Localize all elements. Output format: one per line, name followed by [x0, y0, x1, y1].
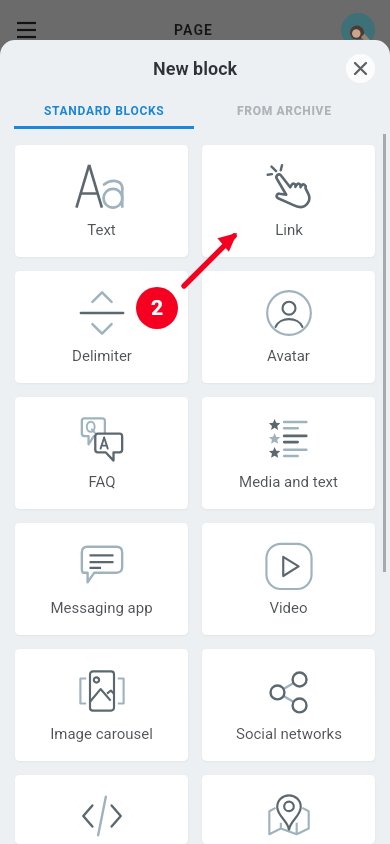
button[interactable]: Delimiter: [15, 271, 188, 383]
button[interactable]: Social networks: [202, 649, 375, 761]
staticText: STANDARD BLOCKS: [44, 104, 165, 118]
staticText: FAQ: [88, 473, 116, 491]
staticText: Media and text: [239, 473, 338, 491]
button[interactable]: Media and text: [202, 397, 375, 509]
staticText: Messaging app: [50, 599, 153, 617]
staticText: FROM ARCHIVE: [237, 104, 332, 118]
button[interactable]: Avatar: [202, 271, 375, 383]
button[interactable]: FAQ: [15, 397, 188, 509]
button[interactable]: Text: [15, 145, 188, 257]
button[interactable]: Close: [346, 54, 375, 83]
button[interactable]: Video: [202, 523, 375, 635]
staticText: Link: [275, 221, 303, 239]
staticText: Image carousel: [50, 725, 153, 743]
button[interactable]: Image carousel: [15, 649, 188, 761]
button[interactable]: Code: [15, 775, 188, 844]
button[interactable]: Map: [202, 775, 375, 844]
button[interactable]: Menu: [6, 10, 46, 50]
button[interactable]: Link: [202, 145, 375, 257]
staticText: New block: [153, 58, 238, 79]
staticText: Social networks: [236, 725, 342, 743]
staticText: Avatar: [267, 347, 310, 365]
button[interactable]: STANDARD BLOCKS: [14, 96, 194, 126]
button[interactable]: FROM ARCHIVE: [194, 96, 374, 126]
staticText: Delimiter: [72, 347, 132, 365]
staticText: 2: [151, 296, 164, 321]
button[interactable]: Messaging app: [15, 523, 188, 635]
staticText: Text: [87, 221, 116, 239]
button[interactable]: Profile: [341, 13, 375, 47]
staticText: Video: [269, 599, 308, 617]
staticText: PAGE: [174, 22, 213, 38]
